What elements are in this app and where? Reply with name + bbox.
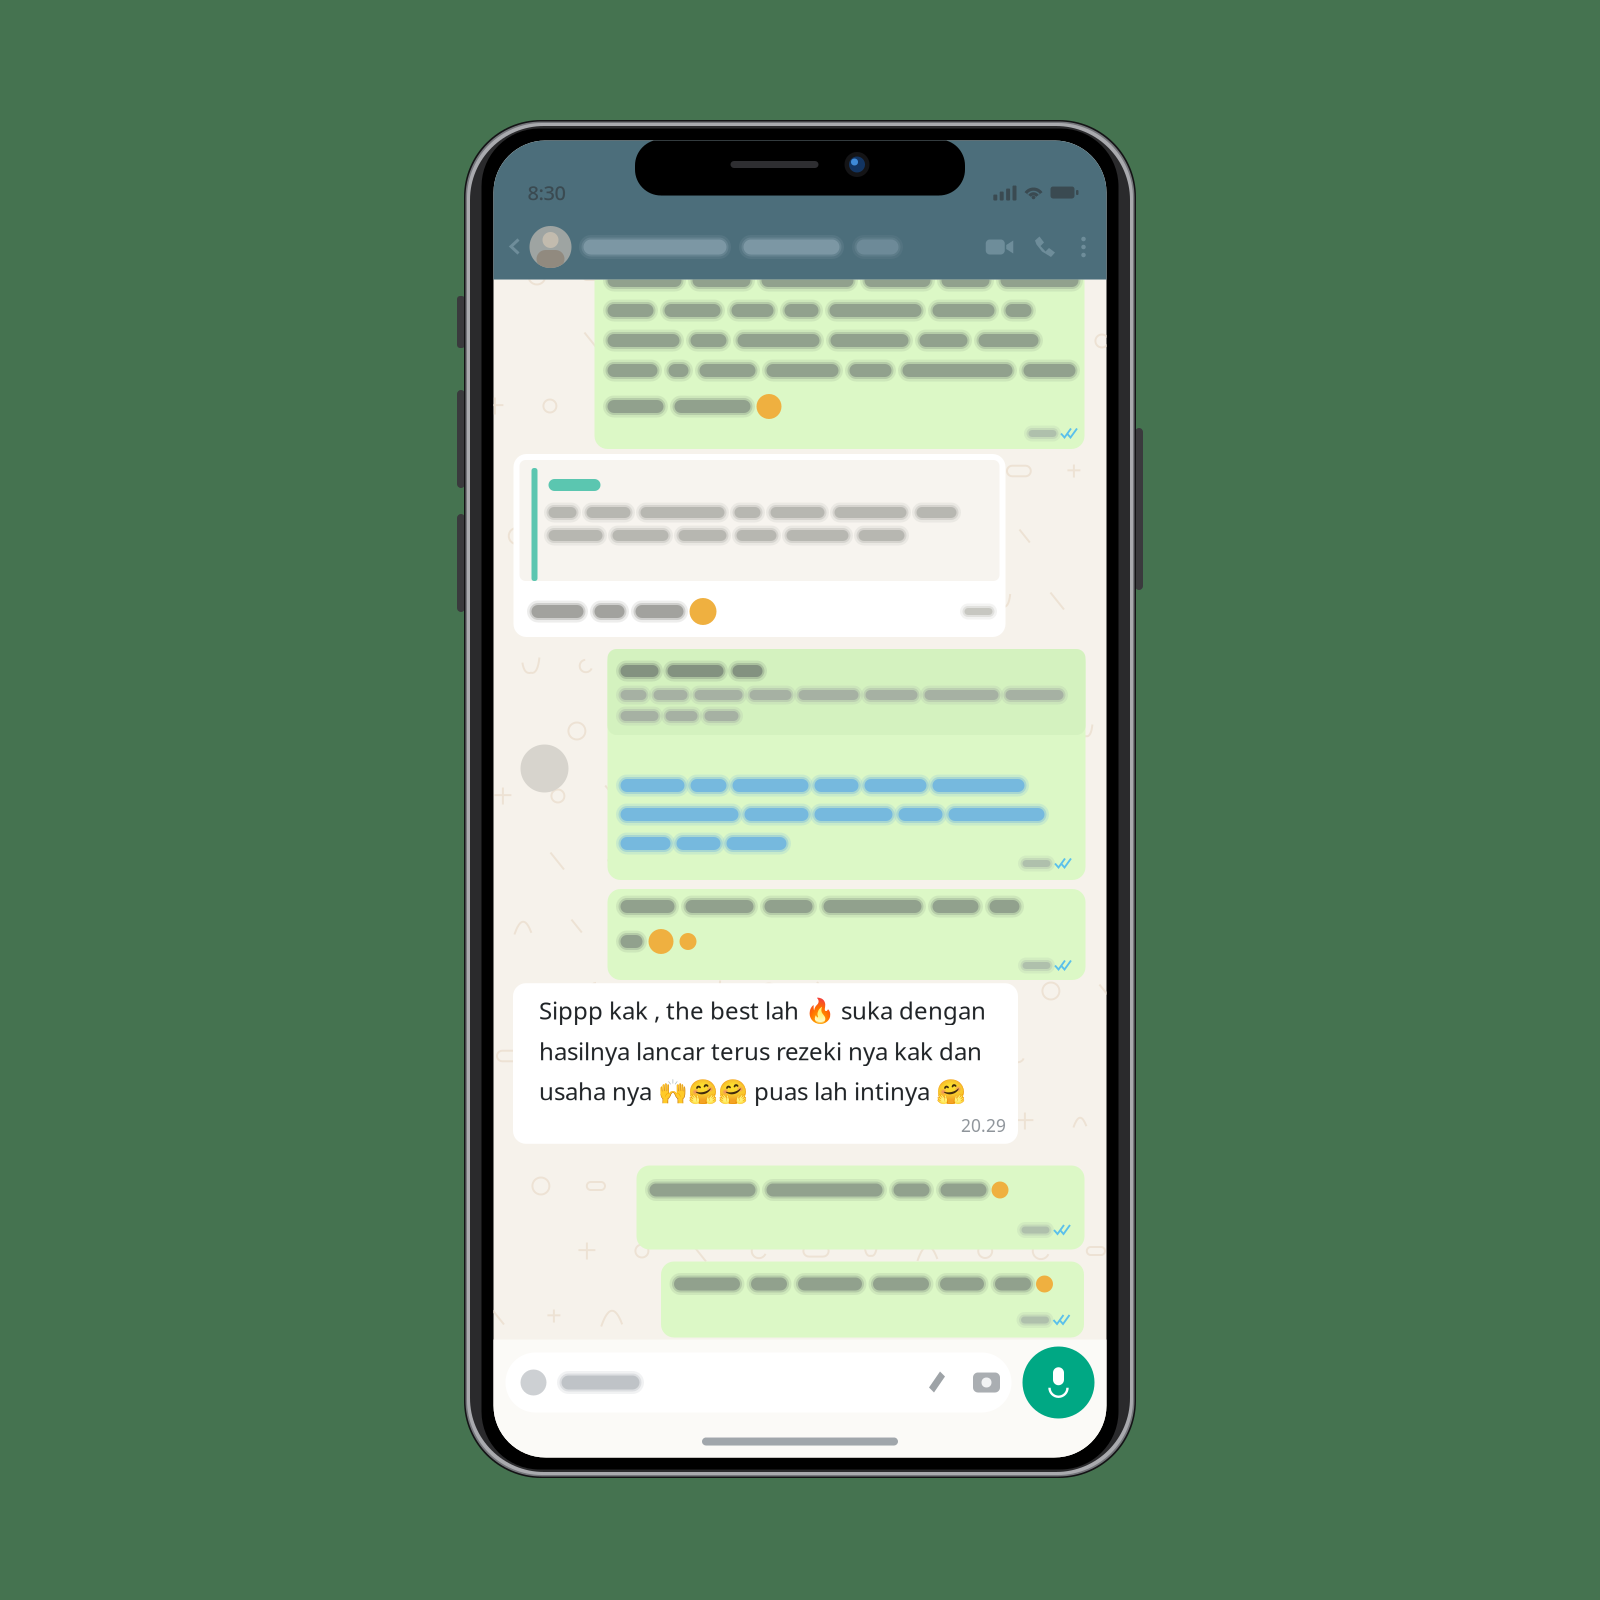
button[interactable]: More options: [1066, 214, 1100, 279]
button[interactable]: Emoji: [505, 1352, 561, 1412]
button[interactable]: Group info: [571, 214, 909, 279]
button[interactable]: Record voice message: [1022, 1346, 1094, 1418]
staticText: Sippp kak , the best lah 🔥 suka dengan: [539, 994, 986, 1026]
staticText: 20.29: [961, 1114, 1006, 1137]
button[interactable]: Group photo: [529, 226, 571, 268]
staticText: usaha nya 🙌🤗🤗 puas lah intinya 🤗: [539, 1075, 966, 1107]
button[interactable]: Camera: [961, 1352, 1011, 1412]
button[interactable]: Attach: [913, 1352, 961, 1412]
button[interactable]: Video call: [976, 214, 1022, 279]
button[interactable]: Voice call: [1022, 214, 1066, 279]
staticText: hasilnya lancar terus rezeki nya kak dan: [539, 1035, 982, 1067]
button[interactable]: Back: [501, 214, 527, 279]
staticText: 8:30: [527, 179, 565, 206]
